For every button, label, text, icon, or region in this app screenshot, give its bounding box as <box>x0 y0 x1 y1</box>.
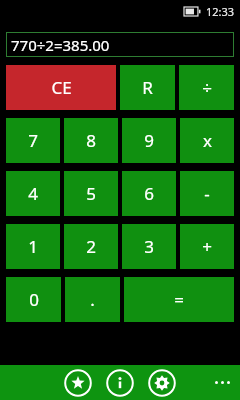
staticText: . <box>90 288 95 311</box>
staticText: CE <box>51 76 72 99</box>
button[interactable]: 3 <box>122 224 176 269</box>
button[interactable]: ÷ <box>179 65 234 110</box>
staticText: 770÷2=385.00 <box>11 35 110 55</box>
staticText: 2 <box>86 235 96 258</box>
button[interactable]: = <box>124 277 234 322</box>
button[interactable]: 1 <box>6 224 60 269</box>
staticText: 5 <box>86 182 96 205</box>
staticText: 4 <box>28 182 38 205</box>
staticText: 6 <box>144 182 154 205</box>
button[interactable]: CE <box>6 65 116 110</box>
staticText: 0 <box>29 288 39 311</box>
staticText: ÷ <box>202 76 212 99</box>
button[interactable]: 0 <box>6 277 61 322</box>
button[interactable]: 2 <box>64 224 118 269</box>
staticText: 7 <box>28 129 38 152</box>
button[interactable]: 4 <box>6 171 60 216</box>
button[interactable]: 8 <box>64 118 118 163</box>
staticText: 8 <box>86 129 96 152</box>
button[interactable]: 6 <box>122 171 176 216</box>
button[interactable]: More options <box>212 378 233 387</box>
staticText: 9 <box>144 129 154 152</box>
staticText: + <box>202 235 212 258</box>
button[interactable]: + <box>180 224 234 269</box>
button[interactable]: About <box>106 369 134 397</box>
button[interactable]: Settings <box>148 369 176 397</box>
staticText: = <box>174 288 184 311</box>
button[interactable]: 5 <box>64 171 118 216</box>
button[interactable]: R <box>120 65 175 110</box>
button[interactable]: 9 <box>122 118 176 163</box>
button[interactable]: Favorites <box>64 369 92 397</box>
button[interactable]: - <box>180 171 234 216</box>
staticText: 12:33 <box>206 4 235 19</box>
staticText: x <box>203 129 212 152</box>
button[interactable]: . <box>65 277 120 322</box>
button[interactable]: x <box>180 118 234 163</box>
button[interactable]: 7 <box>6 118 60 163</box>
staticText: 3 <box>144 235 154 258</box>
staticText: - <box>204 182 210 205</box>
staticText: R <box>142 76 153 99</box>
staticText: 1 <box>28 235 38 258</box>
